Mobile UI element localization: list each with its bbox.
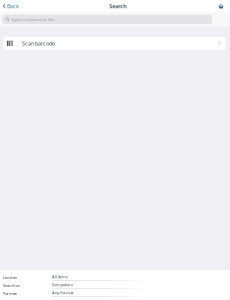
button[interactable]: Limit to: [0, 273, 230, 281]
staticText: Back [7, 3, 19, 10]
staticText: Everywhere [52, 282, 73, 287]
button[interactable]: Scan barcode [0, 37, 230, 50]
staticText: Limit to: [3, 275, 17, 280]
button[interactable]: Search in: [0, 281, 230, 289]
staticText: Search in: [3, 283, 20, 288]
staticText: Format: [3, 291, 17, 296]
button[interactable]: Back [0, 0, 23, 12]
staticText: Any Format [52, 290, 73, 295]
staticText: All Items [52, 274, 68, 279]
staticText: Scan barcode [22, 40, 55, 47]
button[interactable]: Type in a keyword or title... [0, 12, 230, 26]
staticText: Search [109, 3, 126, 10]
staticText: Type in a keyword or title... [11, 17, 57, 22]
button[interactable]: Format: [0, 289, 230, 297]
button[interactable]: Home [212, 0, 230, 12]
